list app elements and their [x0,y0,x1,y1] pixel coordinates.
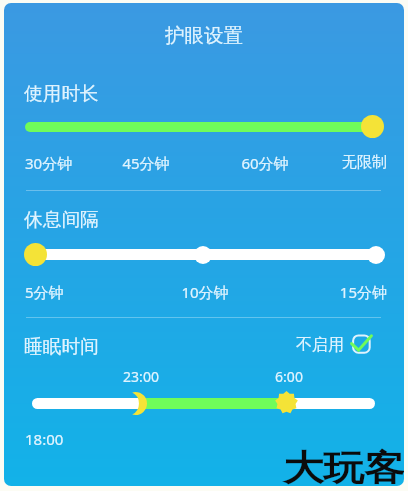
staticText: 无限制 [327,153,387,172]
staticText: 护眼设置 [165,23,243,48]
button[interactable]: Wake up time [275,391,298,414]
staticText: 23:00 [111,367,171,386]
button[interactable]: 15 minutes [367,246,385,264]
staticText: 45分钟 [116,153,176,173]
staticText: 18:00 [25,429,64,449]
staticText: 60分钟 [235,153,295,173]
button[interactable]: 10 minutes [194,246,212,264]
staticText: 不启用 [296,335,344,355]
button[interactable]: Sleep start time [124,392,147,415]
staticText: 睡眠时间 [24,335,99,359]
staticText: 休息间隔 [24,208,99,232]
staticText: 使用时长 [24,82,99,106]
button[interactable]: 不启用 [296,332,371,358]
staticText: 5分钟 [25,282,85,302]
staticText: 10分钟 [175,282,235,302]
button[interactable]: Usage duration slider [361,115,384,138]
staticText: 15分钟 [327,282,387,302]
staticText: 大玩客 [283,446,404,486]
button[interactable]: 5 minutes [24,243,47,266]
staticText: 30分钟 [25,153,85,173]
staticText: 6:00 [259,367,319,386]
